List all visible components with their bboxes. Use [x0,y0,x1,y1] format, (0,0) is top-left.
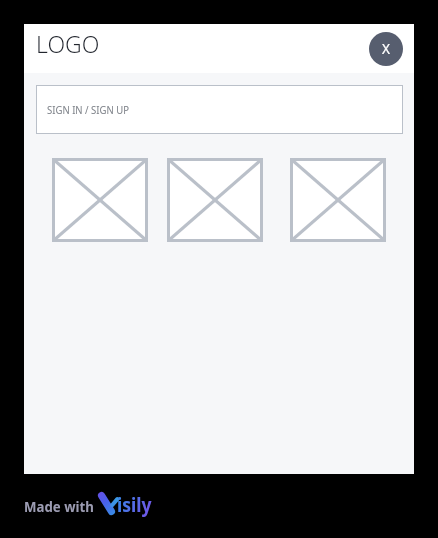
button[interactable]: Close [369,32,403,66]
button[interactable]: Image placeholder [52,158,148,242]
staticText: LOGO [36,28,100,59]
button[interactable]: Image placeholder [167,158,263,242]
staticText: SIGN IN / SIGN UP [47,103,130,117]
staticText: Made with [24,497,94,516]
button[interactable]: SIGN IN / SIGN UP [36,85,403,134]
staticText: X [382,39,390,58]
button[interactable]: Image placeholder [290,158,386,242]
staticText: isily [117,491,152,518]
